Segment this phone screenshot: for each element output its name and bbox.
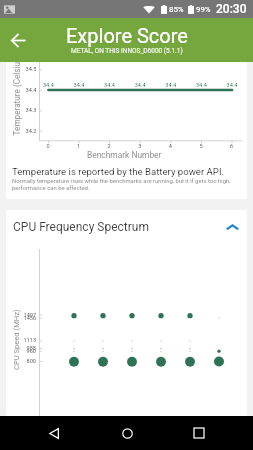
- button[interactable]: Back: [2, 24, 34, 56]
- staticText: 20:30: [216, 2, 247, 16]
- button[interactable]: Recent apps: [180, 416, 218, 450]
- staticText: METAL, ON THIS INNOS_D6000 (5.1.1): [71, 47, 183, 55]
- button[interactable]: CPU Frequency Spectrum: [6, 210, 247, 244]
- staticText: 99%: [196, 5, 211, 14]
- staticText: Normally temperature rises while the ben…: [12, 178, 236, 192]
- staticText: Temperature is reported by the Battery p…: [12, 166, 225, 177]
- staticText: Explore Score: [66, 24, 188, 47]
- staticText: CPU Frequency Spectrum: [13, 220, 149, 234]
- button[interactable]: Home: [108, 416, 146, 450]
- button[interactable]: Collapse section: [218, 213, 246, 241]
- button[interactable]: Back: [35, 416, 73, 450]
- staticText: 85%: [169, 5, 184, 14]
